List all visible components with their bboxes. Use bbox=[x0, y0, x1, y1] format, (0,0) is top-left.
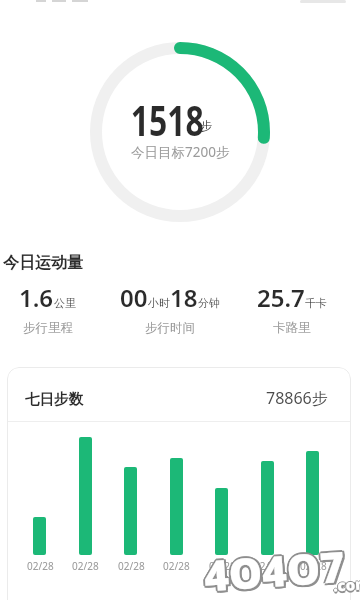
staticText: 25.7 bbox=[257, 281, 305, 314]
staticText: 02/28 bbox=[209, 559, 236, 573]
staticText: 02/28 bbox=[254, 559, 281, 573]
staticText: .com bbox=[331, 573, 360, 596]
staticText: 七日步数 bbox=[25, 390, 83, 408]
staticText: 02/28 bbox=[118, 559, 145, 573]
staticText: 4O4O7 bbox=[201, 536, 346, 600]
staticText: 4O4O7 bbox=[202, 535, 346, 600]
staticText: .com bbox=[334, 573, 360, 595]
staticText: 4O4O7 bbox=[204, 539, 349, 600]
staticText: .com bbox=[332, 575, 360, 597]
staticText: 步行时间 bbox=[145, 320, 195, 336]
staticText: 00 bbox=[120, 281, 148, 314]
staticText: 1.6 bbox=[19, 281, 54, 314]
staticText: 公里 bbox=[54, 296, 76, 310]
staticText: 分钟 bbox=[198, 296, 220, 310]
staticText: 步行里程 bbox=[23, 320, 73, 336]
staticText: 4O4O7 bbox=[204, 537, 349, 600]
staticText: 今日运动量 bbox=[3, 253, 83, 273]
staticText: .com bbox=[332, 572, 360, 595]
staticText: 4O4O7 bbox=[202, 539, 347, 600]
staticText: 卡路里 bbox=[273, 320, 311, 336]
staticText: 02/28 bbox=[300, 559, 327, 573]
staticText: 02/28 bbox=[27, 559, 54, 573]
staticText: .com bbox=[332, 573, 360, 596]
staticText: 4O4O7 bbox=[202, 537, 347, 600]
staticText: 4O4O7 bbox=[200, 537, 345, 600]
staticText: 02/28 bbox=[72, 559, 99, 573]
staticText: 02/28 bbox=[163, 559, 190, 573]
staticText: 1518 bbox=[131, 91, 204, 148]
staticText: 18 bbox=[170, 281, 198, 314]
staticText: 今日目标7200步 bbox=[131, 143, 230, 161]
staticText: 4O4O7 bbox=[204, 536, 349, 600]
staticText: 千卡 bbox=[305, 296, 327, 310]
staticText: 4O4O7 bbox=[201, 539, 346, 600]
staticText: 78866步 bbox=[266, 387, 328, 409]
button[interactable]: 七日步数 bbox=[7, 367, 351, 600]
staticText: 步 bbox=[200, 118, 212, 133]
staticText: 小时 bbox=[148, 296, 170, 310]
